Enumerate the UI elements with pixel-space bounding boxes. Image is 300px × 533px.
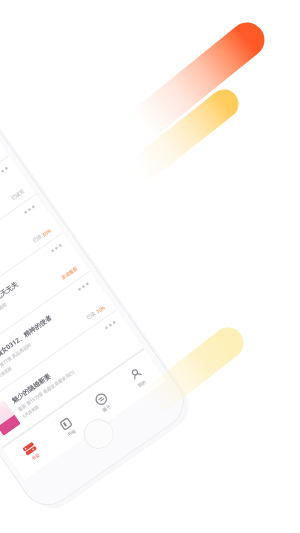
staticText: 1天前更新	[0, 365, 13, 380]
button[interactable]: 圈子	[74, 374, 131, 430]
button[interactable]: 霸道总裁的小娇妻	[0, 156, 35, 293]
staticText: 重生之温情不过七天无关	[0, 280, 20, 328]
button[interactable]: More options	[23, 204, 36, 215]
staticText: 神医嫡女0312、精神的使者	[0, 313, 53, 366]
staticText: 未读最新	[60, 265, 79, 281]
staticText: 75%	[94, 304, 106, 315]
staticText: 最新 第203章 心动的瞬间	[0, 301, 8, 335]
staticText: 已读	[32, 233, 43, 244]
button[interactable]: 重生之温情不过七天无关	[0, 233, 89, 370]
button[interactable]: More options	[50, 243, 63, 254]
button[interactable]: More options	[77, 281, 90, 292]
button[interactable]: 书城	[39, 399, 96, 455]
button[interactable]: 我的	[109, 349, 166, 405]
button[interactable]: 天才萌宝腹黑娘亲	[0, 195, 62, 331]
staticText: 已读	[86, 310, 97, 321]
button[interactable]: More options	[0, 166, 9, 177]
staticText: 圈子	[102, 403, 112, 413]
button[interactable]: 神医嫡女0312、精神的使者	[0, 272, 116, 408]
staticText: 5天前更新	[22, 404, 40, 419]
staticText: 书架	[31, 452, 41, 461]
staticText: 最新 第77章 风云再起时	[0, 341, 32, 374]
button[interactable]: 魅少的隐婚新妻	[0, 310, 143, 447]
staticText: 已读完	[11, 188, 25, 201]
staticText: 书城	[66, 428, 77, 437]
staticText: 我的	[137, 379, 147, 388]
button[interactable]: 书架	[3, 423, 61, 480]
button[interactable]: 盛世婚宠之枭妻难驯	[0, 118, 9, 254]
staticText: 魅少的隐婚新妻	[10, 372, 52, 405]
staticText: 最新 第1519章 吾最欢喜最欢你(1)	[17, 368, 76, 412]
button[interactable]: More options	[104, 320, 117, 331]
staticText: 50%	[40, 227, 52, 238]
